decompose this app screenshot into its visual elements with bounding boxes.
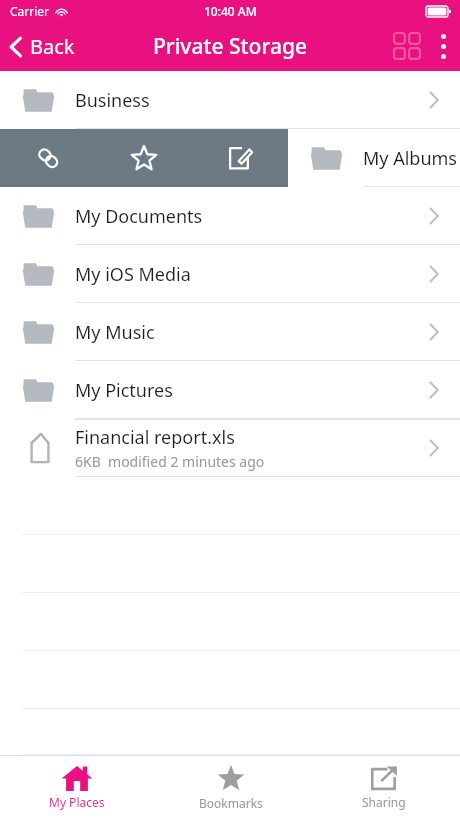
button[interactable]: Favorite xyxy=(96,129,192,187)
staticText: My Pictures xyxy=(75,378,173,403)
staticText: Back xyxy=(30,33,75,60)
button[interactable]: Bookmarks xyxy=(154,756,307,818)
staticText: My Documents xyxy=(75,204,203,229)
button[interactable]: My Documents xyxy=(0,187,460,245)
button[interactable]: Link xyxy=(0,129,96,187)
button[interactable]: Back xyxy=(0,27,85,66)
button[interactable]: My Places xyxy=(0,756,154,818)
button[interactable]: Financial report.xls xyxy=(0,419,460,477)
button[interactable]: Business xyxy=(0,71,460,129)
staticText: Sharing xyxy=(362,794,406,810)
button[interactable]: My iOS Media xyxy=(0,245,460,303)
staticText: Financial report.xls xyxy=(75,425,235,450)
button[interactable]: My Albums xyxy=(288,129,460,187)
staticText: My Music xyxy=(75,320,155,345)
staticText: My Places xyxy=(49,794,105,810)
button[interactable]: Edit xyxy=(192,129,288,187)
staticText: Private Storage xyxy=(153,32,307,61)
staticText: 6KB modified 2 minutes ago xyxy=(75,452,265,471)
button[interactable]: Sharing xyxy=(307,756,460,818)
staticText: My iOS Media xyxy=(75,262,191,287)
staticText: My Albums xyxy=(363,146,457,171)
button[interactable]: My Pictures xyxy=(0,361,460,419)
staticText: Carrier xyxy=(10,3,50,19)
button[interactable]: Grid view xyxy=(384,23,431,70)
button[interactable]: My Music xyxy=(0,303,460,361)
staticText: Bookmarks xyxy=(199,795,263,811)
button[interactable]: More options xyxy=(431,24,460,69)
staticText: Business xyxy=(75,88,150,113)
staticText: 10:40 AM xyxy=(204,3,257,19)
